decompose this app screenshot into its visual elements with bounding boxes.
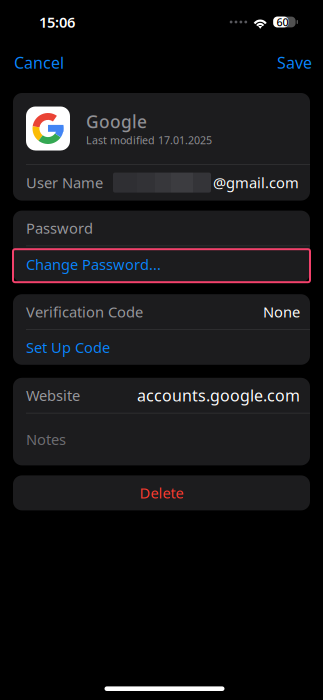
staticText: Verification Code: [26, 302, 143, 321]
staticText: Cancel: [14, 52, 64, 73]
staticText: accounts.google.com: [137, 385, 300, 406]
button[interactable]: Set Up Code: [13, 330, 310, 365]
staticText: Change Password...: [26, 254, 161, 274]
staticText: Website: [26, 386, 80, 405]
staticText: Notes: [26, 430, 66, 449]
button[interactable]: Change Password...: [13, 246, 310, 282]
staticText: Last modified 17.01.2025: [86, 133, 212, 147]
button[interactable]: Cancel: [9, 46, 69, 79]
staticText: Delete: [139, 483, 183, 503]
staticText: @gmail.com: [213, 173, 299, 192]
staticText: Set Up Code: [26, 338, 110, 357]
button[interactable]: Delete: [13, 475, 310, 510]
staticText: Password: [26, 218, 93, 238]
staticText: User Name: [26, 173, 103, 192]
staticText: None: [263, 302, 300, 321]
staticText: Google: [86, 110, 147, 133]
button[interactable]: Save: [272, 46, 317, 79]
staticText: Save: [277, 52, 312, 73]
staticText: 15:06: [39, 12, 75, 32]
staticText: 60: [276, 15, 288, 29]
